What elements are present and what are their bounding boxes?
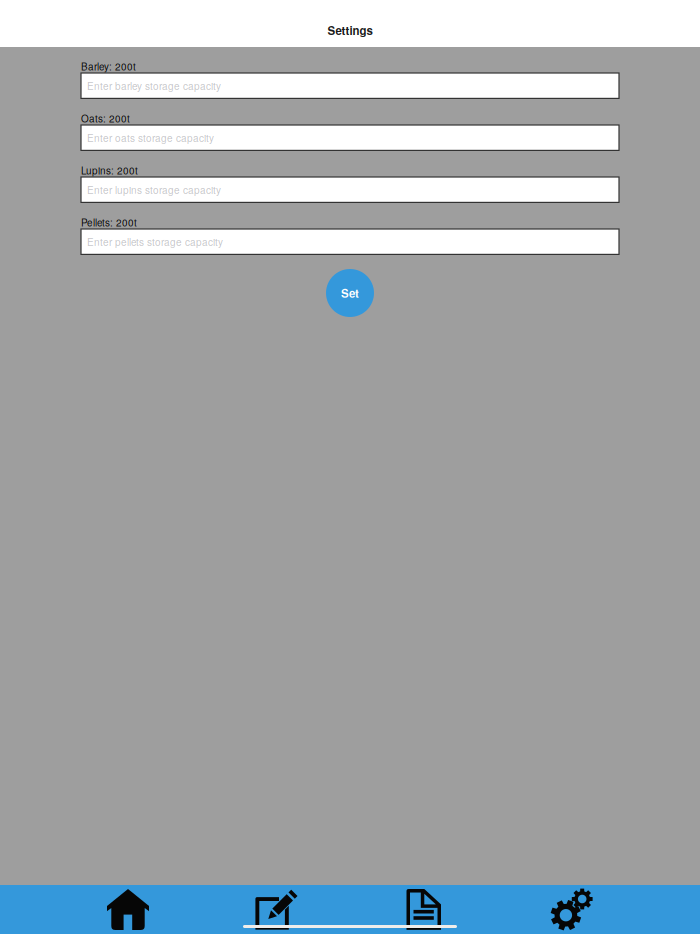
staticText: Set xyxy=(341,285,359,301)
button[interactable]: Enter lupins storage capacity xyxy=(81,177,619,202)
button[interactable]: Documents xyxy=(350,885,498,934)
staticText: Oats: 200t xyxy=(81,111,130,125)
button[interactable]: Compose xyxy=(202,885,350,934)
button[interactable]: Enter barley storage capacity xyxy=(81,73,619,98)
staticText: Enter oats storage capacity xyxy=(87,130,214,145)
button[interactable]: Enter oats storage capacity xyxy=(81,125,619,150)
staticText: Settings xyxy=(327,22,372,38)
staticText: Enter lupins storage capacity xyxy=(87,182,221,197)
button[interactable]: Settings xyxy=(498,885,646,934)
button[interactable]: Enter pellets storage capacity xyxy=(81,229,619,254)
button[interactable]: Set xyxy=(326,269,374,317)
staticText: Enter barley storage capacity xyxy=(87,78,221,93)
button[interactable]: Home xyxy=(54,885,202,934)
staticText: Enter pellets storage capacity xyxy=(87,234,223,249)
staticText: Pellets: 200t xyxy=(81,215,137,229)
staticText: Lupins: 200t xyxy=(81,163,138,177)
staticText: Barley: 200t xyxy=(81,59,136,73)
